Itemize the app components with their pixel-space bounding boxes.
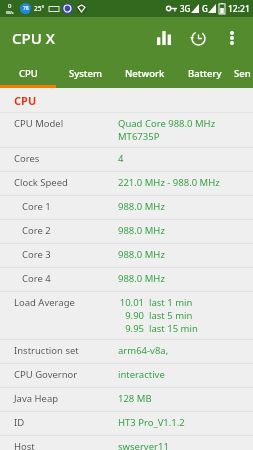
button[interactable]: Battery: [176, 58, 234, 88]
staticText: interactive: [118, 368, 165, 381]
button[interactable]: More options: [215, 21, 249, 55]
staticText: Load Average: [14, 296, 118, 309]
staticText: CPU: [19, 67, 38, 80]
staticText: swserver11: [118, 440, 169, 450]
staticText: 988.0 MHz: [118, 224, 165, 237]
button[interactable]: Host: [0, 436, 253, 450]
staticText: Host: [14, 440, 118, 450]
staticText: 128 MB: [118, 392, 152, 405]
staticText: 0: [8, 2, 12, 10]
staticText: CPU X: [12, 28, 55, 48]
button[interactable]: Load Average: [0, 292, 253, 340]
staticText: CPU Model: [14, 117, 118, 130]
button[interactable]: CPU Governor: [0, 364, 253, 388]
staticText: 988.0 MHz: [118, 272, 165, 285]
staticText: System: [69, 67, 102, 80]
staticText: Core 1: [22, 200, 118, 213]
staticText: 988.0 MHz: [118, 248, 165, 261]
button[interactable]: Network: [114, 58, 176, 88]
staticText: Core 3: [22, 248, 118, 261]
button[interactable]: History: [181, 21, 215, 55]
staticText: last 15 min: [149, 322, 198, 335]
button[interactable]: Statistics: [147, 21, 181, 55]
button[interactable]: ID: [0, 412, 253, 436]
button[interactable]: Core 3: [0, 244, 253, 268]
staticText: Cores: [14, 152, 118, 165]
staticText: Sensors: [234, 67, 253, 80]
button[interactable]: Sensors: [234, 58, 253, 88]
staticText: 3G: [180, 3, 191, 14]
button[interactable]: Core 4: [0, 268, 253, 292]
staticText: CPU Governor: [14, 368, 118, 381]
staticText: last 1 min: [149, 296, 193, 309]
staticText: KB/s: [6, 10, 14, 15]
staticText: Instruction set: [14, 344, 118, 357]
button[interactable]: Clock Speed: [0, 172, 253, 196]
button[interactable]: Cores: [0, 148, 253, 172]
staticText: MT6735P: [118, 130, 160, 143]
staticText: 988.0 MHz: [118, 200, 165, 213]
button[interactable]: CPU Model: [0, 113, 253, 148]
staticText: Core 4: [22, 272, 118, 285]
button[interactable]: Core 1: [0, 196, 253, 220]
button[interactable]: Instruction set: [0, 340, 253, 364]
staticText: Battery: [188, 67, 222, 80]
staticText: last 5 min: [149, 309, 193, 322]
staticText: 4: [118, 152, 124, 165]
staticText: 221.0 MHz - 988.0 MHz: [118, 176, 220, 189]
button[interactable]: Core 2: [0, 220, 253, 244]
button[interactable]: Java Heap: [0, 388, 253, 412]
staticText: HT3 Pro_V1.1.2: [118, 416, 185, 429]
staticText: ID: [14, 416, 118, 429]
staticText: arm64-v8a,: [118, 344, 169, 357]
staticText: 12:21: [228, 3, 250, 15]
staticText: Clock Speed: [14, 176, 118, 189]
button[interactable]: System: [56, 58, 114, 88]
staticText: Core 2: [22, 224, 118, 237]
staticText: CPU: [14, 93, 37, 108]
staticText: G: [202, 3, 208, 14]
staticText: 25°: [34, 4, 45, 13]
staticText: Quad Core 988.0 MHz: [118, 117, 216, 130]
staticText: 9.95: [118, 322, 144, 335]
staticText: Java Heap: [14, 392, 118, 405]
staticText: 10.01: [118, 296, 144, 309]
staticText: 9.90: [118, 309, 144, 322]
button[interactable]: CPU: [0, 58, 56, 88]
staticText: 78: [23, 5, 29, 12]
staticText: Network: [125, 67, 165, 80]
